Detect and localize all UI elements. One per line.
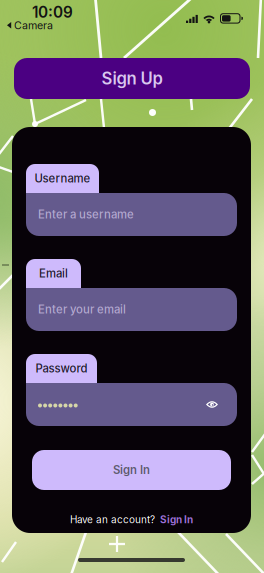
staticText: Enter a username — [38, 208, 134, 221]
staticText: Sign Up — [101, 68, 162, 89]
staticText: Email — [39, 267, 68, 280]
staticText: Username — [34, 172, 90, 185]
staticText: Password — [35, 362, 87, 375]
staticText: Sign In — [160, 513, 193, 526]
staticText: Have an account? — [70, 513, 155, 526]
staticText: Camera — [14, 19, 53, 32]
button[interactable]: Sign Up — [14, 58, 250, 99]
staticText: Enter your email — [38, 303, 126, 316]
button[interactable]: Sign In — [32, 450, 231, 490]
staticText: 10:09 — [32, 3, 73, 22]
staticText: Sign In — [113, 463, 150, 477]
button[interactable]: Sign In — [160, 513, 193, 526]
